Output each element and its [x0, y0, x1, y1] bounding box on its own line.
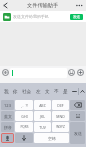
button[interactable]: Symbols [70, 111, 85, 121]
staticText: 英文 [4, 114, 12, 119]
button[interactable]: 空格 [34, 133, 69, 143]
button[interactable]: ,。?! [15, 100, 33, 110]
button[interactable] [10, 68, 67, 78]
staticText: 空格 [48, 136, 56, 141]
button[interactable]: WXYZ [52, 122, 69, 132]
button[interactable]: ABC [34, 100, 51, 110]
button[interactable]: More functions [76, 68, 85, 77]
button[interactable]: 文 [43, 89, 52, 95]
staticText: 我 [4, 89, 9, 95]
staticText: ABC [39, 103, 46, 108]
button[interactable]: More [75, 0, 86, 11]
button[interactable]: 发送 [70, 122, 85, 144]
staticText: 是 [63, 89, 68, 95]
button[interactable]: GHI [15, 111, 33, 121]
button[interactable]: 社会 [20, 89, 34, 95]
staticText: 发送文件给我的手机 [13, 14, 49, 19]
button[interactable]: Voice input [1, 133, 14, 143]
staticText: 发送 [73, 15, 81, 20]
button[interactable]: Collapse [70, 83, 78, 100]
button[interactable]: Hide keyboard [15, 133, 33, 143]
button[interactable]: Emoji [67, 68, 76, 77]
staticText: 不 [54, 89, 59, 95]
button[interactable]: 左 [34, 89, 43, 95]
staticText: 你 [13, 89, 18, 95]
button[interactable]: 拼音 [1, 122, 14, 132]
button[interactable]: Delete [70, 100, 85, 110]
staticText: 左 [36, 89, 41, 95]
staticText: DEF [57, 103, 64, 108]
button[interactable]: TUV [34, 122, 51, 132]
staticText: 文件传输助手 [27, 2, 59, 9]
staticText: 拼音 [4, 125, 12, 130]
button[interactable]: PQRS [15, 122, 33, 132]
button[interactable]: 发送文件给我的手机 [0, 11, 86, 22]
button[interactable]: 发送 [70, 14, 83, 20]
button[interactable]: DEF [52, 100, 69, 110]
staticText: MNO [56, 114, 65, 119]
staticText: WXYZ [56, 125, 65, 129]
button[interactable]: 我 [2, 89, 11, 95]
staticText: PQRS [20, 125, 29, 129]
staticText: TUV [39, 125, 46, 130]
button[interactable]: 英文 [1, 111, 14, 121]
staticText: 123 [4, 103, 11, 108]
staticText: ,。?! [21, 103, 28, 108]
button[interactable]: 123 [1, 100, 14, 110]
staticText: 文 [45, 89, 50, 95]
button[interactable]: JKL [34, 111, 51, 121]
button[interactable]: MNO [52, 111, 69, 121]
button[interactable]: 不 [52, 89, 61, 95]
button[interactable]: 你 [11, 89, 20, 95]
staticText: 发送 [74, 131, 82, 136]
staticText: 社会 [22, 89, 32, 95]
button[interactable]: 是 [61, 89, 70, 95]
button[interactable]: Back [0, 0, 11, 11]
staticText: JKL [40, 114, 45, 119]
button[interactable]: Expand candidates [79, 83, 86, 100]
staticText: GHI [21, 114, 28, 119]
button[interactable]: Voice message [1, 68, 10, 77]
